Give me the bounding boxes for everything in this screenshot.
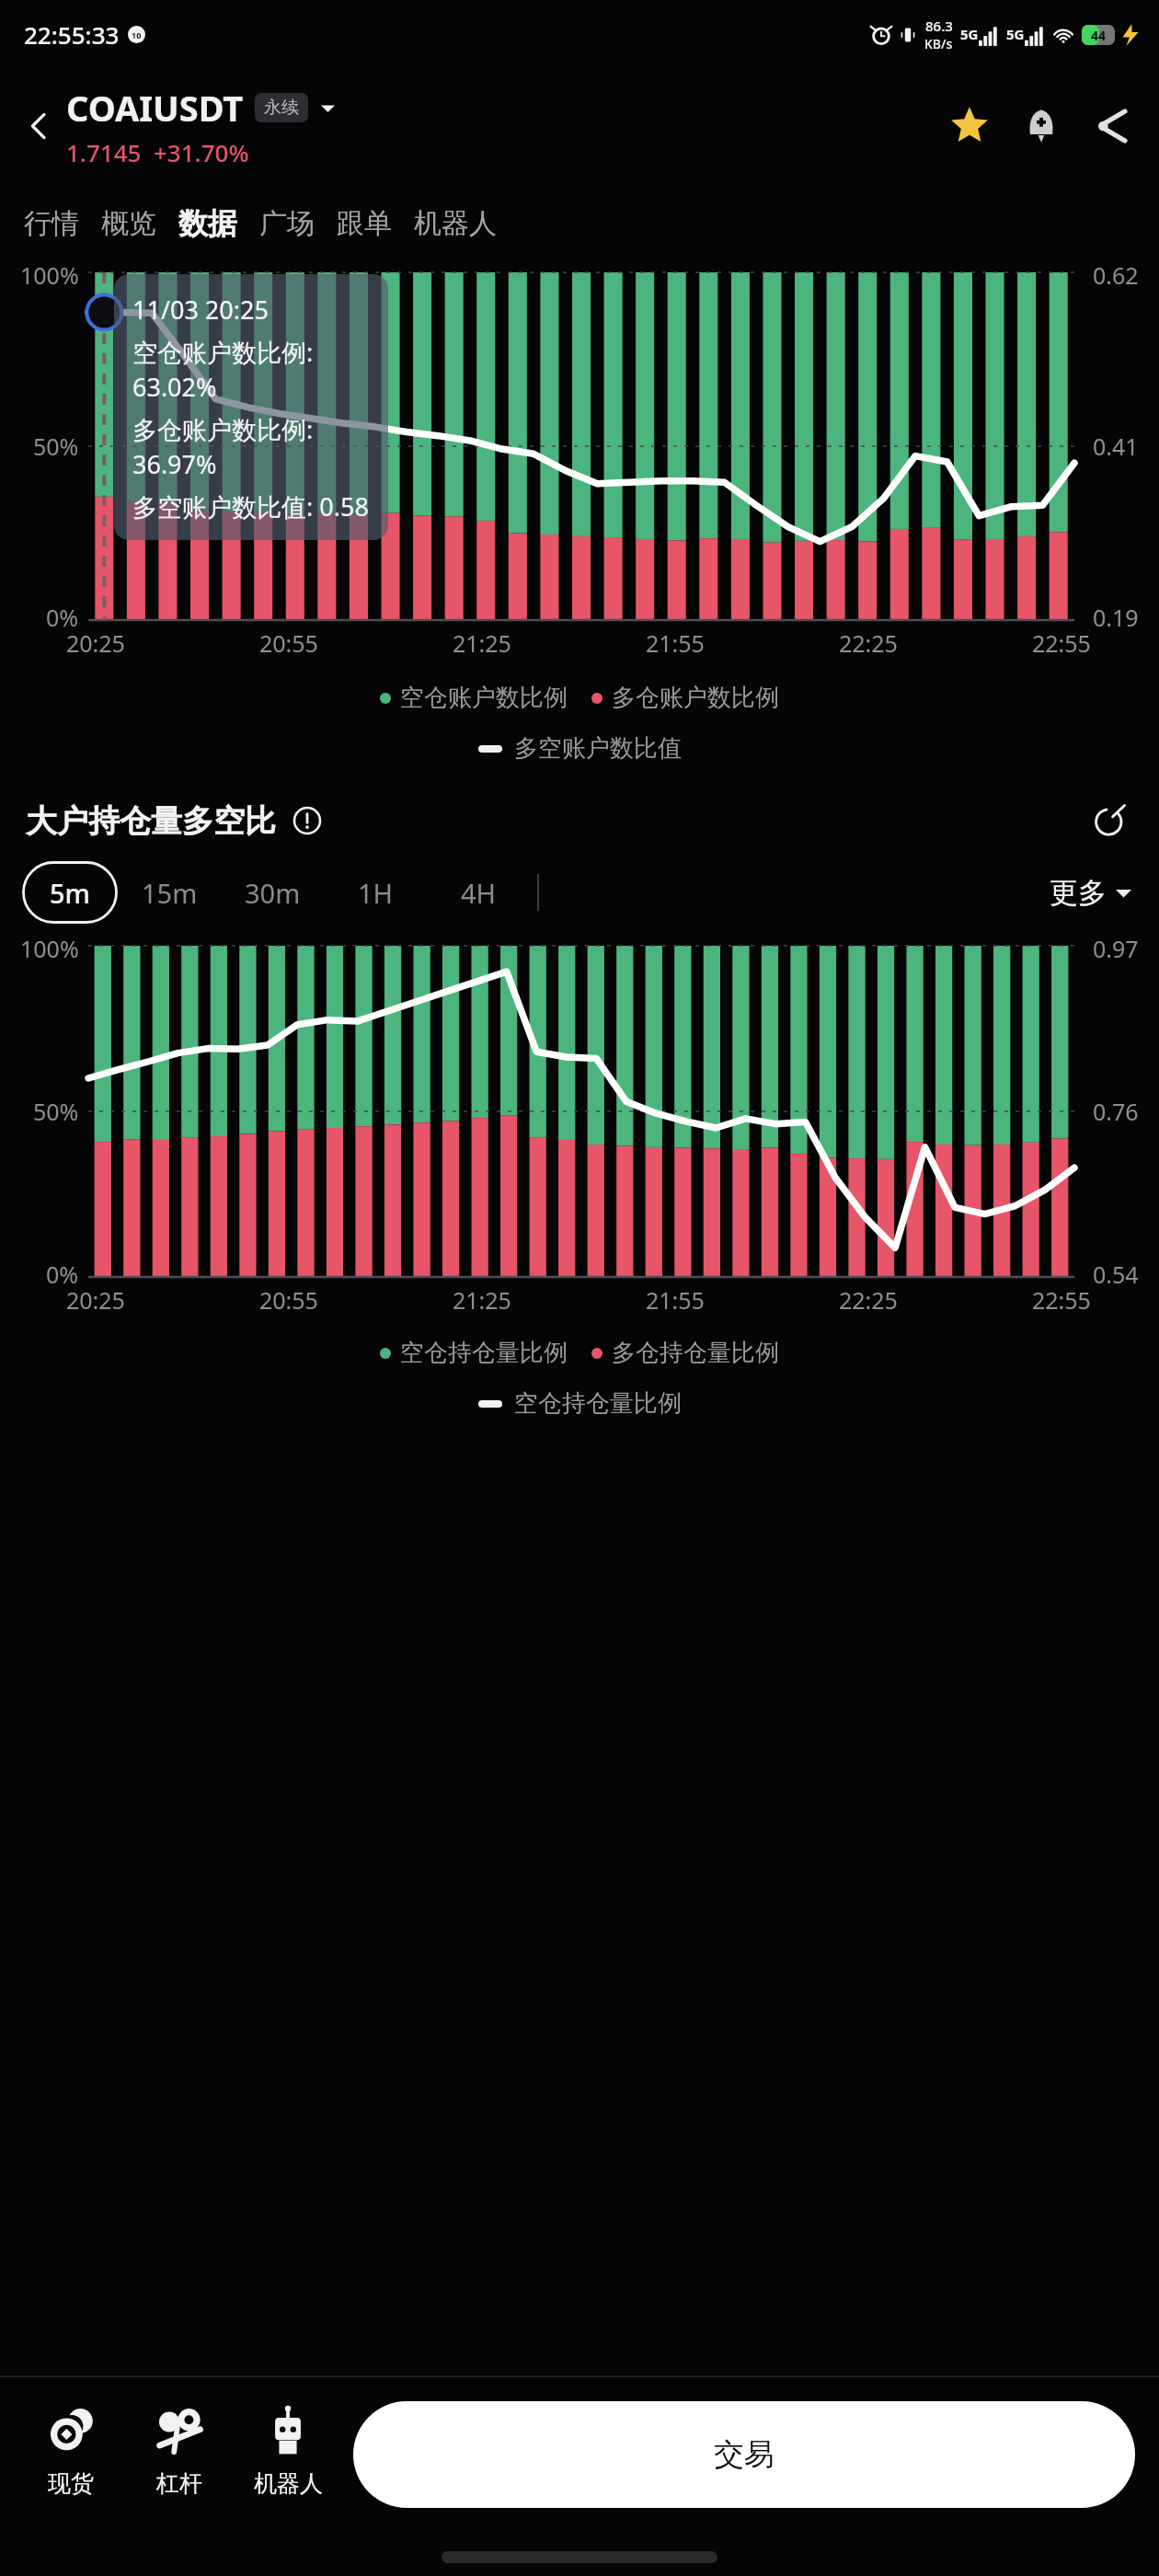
staticText: 概览: [101, 206, 156, 241]
staticText: 22:55:33: [24, 18, 120, 51]
staticText: 100%: [20, 259, 79, 291]
button[interactable]: Favorite: [944, 100, 995, 152]
staticText: 多仓账户数比例: 36.97%: [132, 412, 373, 481]
button[interactable]: 广场: [259, 195, 315, 252]
button[interactable]: Info: [289, 802, 326, 839]
button[interactable]: 数据: [178, 194, 237, 253]
staticText: 44: [1091, 27, 1107, 44]
button[interactable]: Select contract type: [317, 98, 338, 118]
staticText: 0.76: [1093, 1096, 1139, 1127]
staticText: 多仓持仓量比例: [612, 1338, 779, 1368]
staticText: 22:55: [1032, 627, 1091, 659]
staticText: 行情: [24, 206, 79, 241]
staticText: 21:25: [453, 1284, 511, 1316]
staticText: 0.41: [1093, 431, 1139, 462]
staticText: 22:25: [839, 1284, 898, 1316]
staticText: 86.3: [925, 17, 953, 35]
button[interactable]: 机器人: [234, 2401, 342, 2501]
button[interactable]: Share: [1087, 100, 1139, 152]
staticText: 更多: [1050, 875, 1107, 911]
staticText: 数据: [178, 205, 237, 242]
button[interactable]: 机器人: [414, 195, 497, 252]
button[interactable]: 30m: [221, 861, 324, 924]
staticText: 21:55: [646, 1284, 705, 1316]
staticText: 10: [132, 29, 142, 40]
button[interactable]: 杠杆: [125, 2401, 234, 2501]
staticText: 跟单: [337, 206, 392, 241]
staticText: 多空账户数比值: 0.58: [132, 489, 369, 523]
staticText: +31.70%: [154, 136, 249, 168]
staticText: 1H: [358, 875, 394, 911]
staticText: 30m: [245, 875, 301, 911]
staticText: 永续: [264, 97, 299, 119]
button[interactable]: 跟单: [337, 195, 392, 252]
staticText: 100%: [20, 933, 79, 964]
staticText: 杠杆: [156, 2469, 202, 2498]
button[interactable]: 现货: [17, 2401, 125, 2501]
staticText: 空仓持仓量比例: [400, 1338, 568, 1368]
button[interactable]: Back: [9, 97, 68, 155]
button[interactable]: 更多: [1044, 864, 1137, 922]
staticText: 50%: [33, 1096, 79, 1127]
staticText: 5G: [960, 25, 979, 43]
staticText: 空仓持仓量比例: [514, 1388, 682, 1419]
staticText: 21:55: [646, 627, 705, 659]
staticText: 机器人: [414, 206, 497, 241]
staticText: 20:55: [259, 1284, 318, 1316]
staticText: 11/03 20:25: [132, 293, 269, 327]
button[interactable]: 15m: [118, 861, 221, 924]
staticText: 0.19: [1093, 602, 1139, 633]
staticText: 20:25: [66, 627, 125, 659]
staticText: 20:25: [66, 1284, 125, 1316]
staticText: 广场: [259, 206, 315, 241]
staticText: 机器人: [254, 2469, 323, 2498]
staticText: 多空账户数比值: [514, 733, 682, 764]
button[interactable]: 行情: [24, 195, 79, 252]
staticText: 5m: [50, 875, 91, 911]
staticText: KB/s: [924, 35, 953, 52]
button[interactable]: 5m: [22, 861, 118, 924]
staticText: 空仓账户数比例: [400, 683, 568, 713]
staticText: 22:55: [1032, 1284, 1091, 1316]
staticText: 21:25: [453, 627, 511, 659]
button[interactable]: Price alert: [1016, 100, 1067, 152]
staticText: COAIUSDT: [66, 84, 244, 132]
button[interactable]: 1H: [324, 861, 427, 924]
staticText: 4H: [461, 875, 497, 911]
staticText: 20:55: [259, 627, 318, 659]
staticText: 0.62: [1093, 259, 1139, 291]
staticText: 0.97: [1093, 933, 1139, 964]
button[interactable]: 概览: [101, 195, 156, 252]
staticText: 0%: [46, 602, 79, 633]
staticText: 15m: [142, 875, 198, 911]
staticText: 5G: [1006, 25, 1025, 43]
staticText: 22:25: [839, 627, 898, 659]
button[interactable]: 交易: [353, 2401, 1135, 2508]
staticText: 0%: [46, 1259, 79, 1290]
button[interactable]: 4H: [427, 861, 530, 924]
button[interactable]: Open full chart: [1084, 795, 1135, 846]
staticText: 交易: [714, 2435, 775, 2474]
staticText: 现货: [48, 2469, 94, 2498]
staticText: 50%: [33, 431, 79, 462]
button[interactable]: 永续: [255, 93, 308, 122]
staticText: 大户持仓量多空比: [26, 801, 276, 841]
staticText: 0.54: [1093, 1259, 1139, 1290]
staticText: 1.7145: [66, 136, 142, 168]
staticText: 空仓账户数比例: 63.02%: [132, 335, 373, 404]
staticText: 多仓账户数比例: [612, 683, 779, 713]
